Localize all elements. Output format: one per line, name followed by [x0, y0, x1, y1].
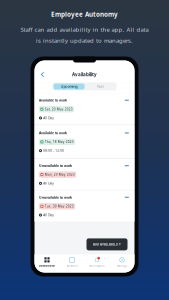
staticText: Mon, 29 May 2023	[45, 172, 75, 177]
staticText: Employee Autonomy	[51, 10, 118, 18]
button[interactable]: More options	[124, 131, 130, 135]
button[interactable]: Back	[38, 70, 46, 78]
staticText: Notification	[89, 264, 105, 268]
button[interactable]: Notification	[84, 257, 109, 268]
staticText: ADD AVAILABILITY	[93, 242, 121, 246]
button[interactable]: More options	[124, 195, 130, 199]
button[interactable]: Past	[84, 83, 115, 89]
staticText: Sat, 20 May 2023	[45, 107, 73, 111]
staticText: All Day	[43, 116, 54, 120]
button[interactable]: Dashboard	[34, 257, 59, 268]
button[interactable]: Settings	[109, 257, 134, 268]
staticText: is instantly updated to managers.	[36, 36, 133, 44]
staticText: Unavailable to work	[39, 195, 72, 200]
staticText: Upcoming	[60, 84, 77, 89]
staticText: Thu, 18 May 2023	[45, 140, 74, 144]
staticText: Schedule	[66, 264, 77, 268]
staticText: Settings	[117, 264, 127, 268]
staticText: Tue, 30 May 2023	[45, 204, 74, 208]
staticText: 08:00 - 12:00	[43, 149, 64, 153]
button[interactable]: ADD AVAILABILITY	[86, 238, 127, 250]
staticText: Available to work	[39, 98, 67, 102]
staticText: All Day	[43, 181, 54, 185]
button[interactable]: More options	[124, 164, 130, 167]
staticText: Available to work	[39, 131, 67, 135]
staticText: Staff can add availability in the app. A…	[20, 25, 148, 33]
button[interactable]: More options	[124, 98, 130, 102]
staticText: All Day	[43, 213, 54, 217]
staticText: Dashboard	[39, 264, 55, 268]
button[interactable]: Upcoming	[53, 83, 84, 89]
staticText: Availability	[72, 71, 97, 78]
button[interactable]: Schedule	[59, 257, 84, 268]
staticText: Past	[96, 84, 103, 89]
staticText: Unavailable to work	[39, 163, 72, 168]
